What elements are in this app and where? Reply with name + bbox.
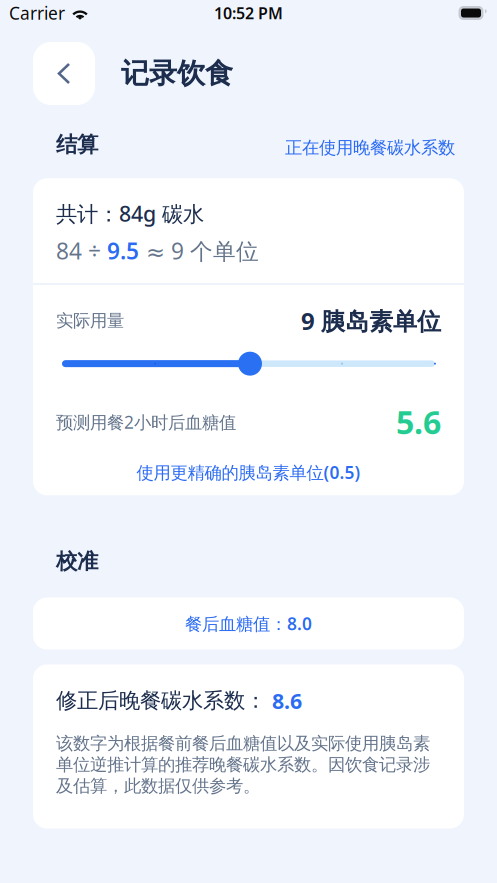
button[interactable]: 正在使用晚餐碳水系数 <box>285 131 455 158</box>
staticText: 84 ÷ <box>56 236 107 266</box>
staticText: 9 胰岛素单位 <box>301 305 441 337</box>
staticText: ≈ 9 个单位 <box>139 236 259 266</box>
staticText: 该数字为根据餐前餐后血糖值以及实际使用胰岛素单位逆推计算的推荐晚餐碳水系数。因饮… <box>56 733 430 797</box>
button[interactable]: 使用更精确的胰岛素单位(0.5) <box>33 459 464 485</box>
staticText: 8.6 <box>266 686 302 715</box>
staticText: 预测用餐2小时后血糖值 <box>56 410 236 433</box>
button[interactable]: Back <box>33 42 95 105</box>
button[interactable]: 餐后血糖值：8.0 <box>33 597 464 649</box>
staticText: 修正后晚餐碳水系数： <box>56 688 266 714</box>
staticText: 使用更精确的胰岛素单位(0.5) <box>136 461 360 484</box>
staticText: 5.6 <box>396 401 441 443</box>
staticText: 餐后血糖值：8.0 <box>185 612 312 635</box>
staticText: 共计：84g 碳水 <box>56 199 204 228</box>
staticText: 结算 <box>56 131 98 158</box>
staticText: 10:52 PM <box>214 2 283 24</box>
staticText: 实际用量 <box>56 310 124 331</box>
staticText: 正在使用晚餐碳水系数 <box>285 137 455 158</box>
staticText: 9.5 <box>107 236 139 266</box>
staticText: Carrier <box>9 1 65 24</box>
staticText: 记录饮食 <box>121 56 233 91</box>
staticText: 校准 <box>56 548 98 574</box>
